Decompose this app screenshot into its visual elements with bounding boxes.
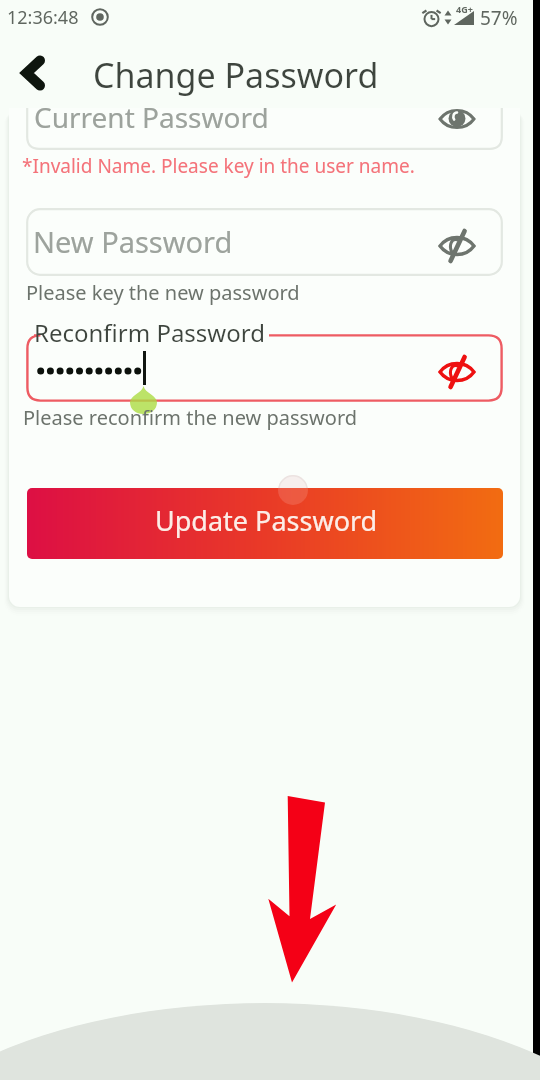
button[interactable]: Update Password <box>27 488 503 559</box>
button[interactable]: Back <box>10 50 56 96</box>
staticText: *Invalid Name. Please key in the user na… <box>22 153 415 179</box>
button[interactable]: Show password <box>429 344 485 400</box>
staticText: Please reconfirm the new password <box>23 404 358 431</box>
staticText: Current Password <box>34 108 269 136</box>
staticText: 12:36:48 <box>7 5 79 30</box>
staticText: Please key the new password <box>26 279 300 306</box>
staticText: Update Password <box>155 502 378 539</box>
staticText: Change Password <box>93 52 379 98</box>
staticText: New Password <box>33 222 233 261</box>
button[interactable]: Hide password <box>429 108 485 147</box>
button[interactable] <box>26 108 503 150</box>
button[interactable]: Show password <box>26 334 503 402</box>
staticText: 4G+ <box>456 3 473 15</box>
button[interactable]: Show password <box>429 218 485 274</box>
staticText: 57% <box>480 5 518 31</box>
staticText: Reconfirm Password <box>34 316 265 349</box>
button[interactable]: New Password <box>26 208 503 276</box>
